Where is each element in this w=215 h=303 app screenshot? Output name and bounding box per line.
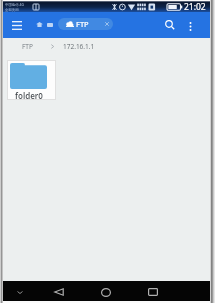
button[interactable]: Search [161, 16, 178, 33]
button[interactable]: Back [50, 283, 68, 301]
button[interactable]: folder0 [7, 60, 56, 100]
button[interactable]: Hide [12, 284, 28, 300]
button[interactable]: More options [182, 18, 198, 34]
staticText: 中国电信 4G [5, 2, 24, 7]
staticText: 全部关闭 [5, 8, 19, 12]
staticText: folder0 [15, 90, 43, 101]
button[interactable]: FTP [22, 42, 33, 51]
staticText: 21:02 [184, 1, 206, 12]
button[interactable]: Home [32, 18, 47, 31]
button[interactable]: 172.16.1.1 [63, 42, 95, 51]
button[interactable]: FTP [58, 18, 113, 30]
button[interactable]: Open tabs [43, 18, 57, 31]
staticText: FTP [76, 19, 89, 29]
button[interactable]: Home [97, 283, 115, 301]
button[interactable]: Navigation menu [8, 16, 26, 34]
button[interactable]: Recent apps [144, 283, 162, 301]
